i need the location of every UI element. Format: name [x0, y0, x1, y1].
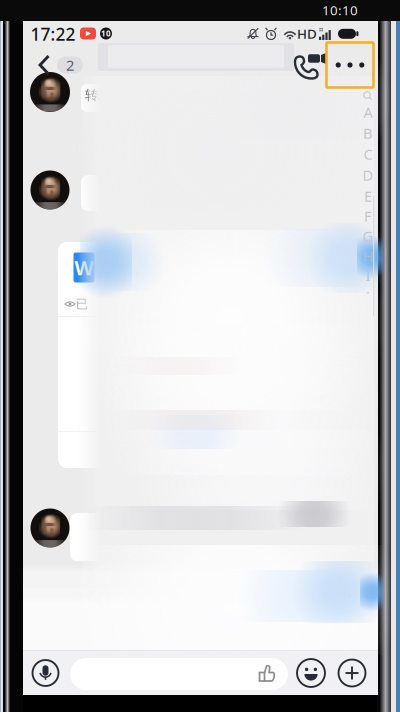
staticText: 10:10	[322, 1, 358, 19]
staticText: W	[74, 254, 93, 281]
staticText: A	[363, 102, 372, 122]
staticText: E	[364, 186, 372, 206]
button[interactable]: More	[325, 41, 375, 89]
staticText: H	[362, 246, 373, 266]
button[interactable]: Voice message	[29, 657, 61, 689]
staticText: 10	[101, 28, 111, 39]
staticText: 转发	[85, 87, 111, 103]
button[interactable]: Emoji	[295, 657, 327, 689]
staticText: G	[362, 226, 373, 246]
staticText: HD	[297, 25, 317, 42]
staticText: 已	[76, 297, 88, 311]
staticText: C	[363, 144, 372, 164]
button[interactable]: More options	[336, 657, 368, 689]
staticText: 17:22	[30, 22, 75, 45]
staticText: 2	[66, 55, 74, 75]
staticText: I	[365, 265, 370, 285]
staticText: F	[364, 206, 372, 226]
button[interactable]: Search	[362, 90, 374, 102]
staticText: D	[362, 165, 373, 185]
button[interactable]: Message	[70, 658, 288, 690]
staticText: ·	[366, 282, 370, 302]
button[interactable]: Voice and video call	[293, 53, 327, 83]
button[interactable]: Back	[37, 52, 85, 78]
staticText: B	[363, 123, 373, 143]
